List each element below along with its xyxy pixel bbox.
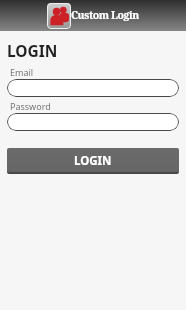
button[interactable] xyxy=(7,79,179,97)
staticText: LOGIN xyxy=(74,153,112,169)
staticText: Custom Login xyxy=(71,8,139,22)
button[interactable]: LOGIN xyxy=(7,148,179,174)
button[interactable] xyxy=(7,113,179,131)
staticText: LOGIN xyxy=(7,40,58,61)
staticText: Email xyxy=(10,66,34,78)
staticText: Password xyxy=(10,100,51,112)
